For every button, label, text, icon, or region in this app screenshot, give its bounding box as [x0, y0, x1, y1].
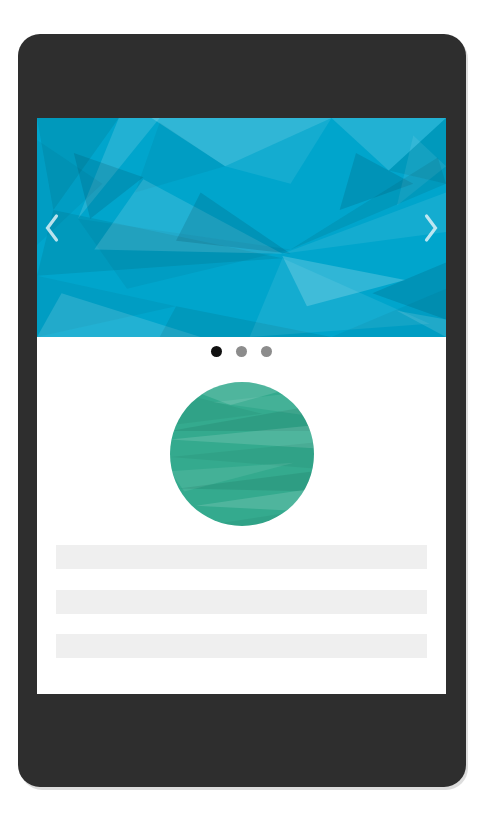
button[interactable]: Previous	[35, 206, 69, 250]
button[interactable]: Next	[414, 206, 448, 250]
button[interactable]	[234, 344, 249, 359]
button[interactable]	[259, 344, 274, 359]
button[interactable]	[209, 344, 224, 359]
button[interactable]	[170, 382, 314, 526]
